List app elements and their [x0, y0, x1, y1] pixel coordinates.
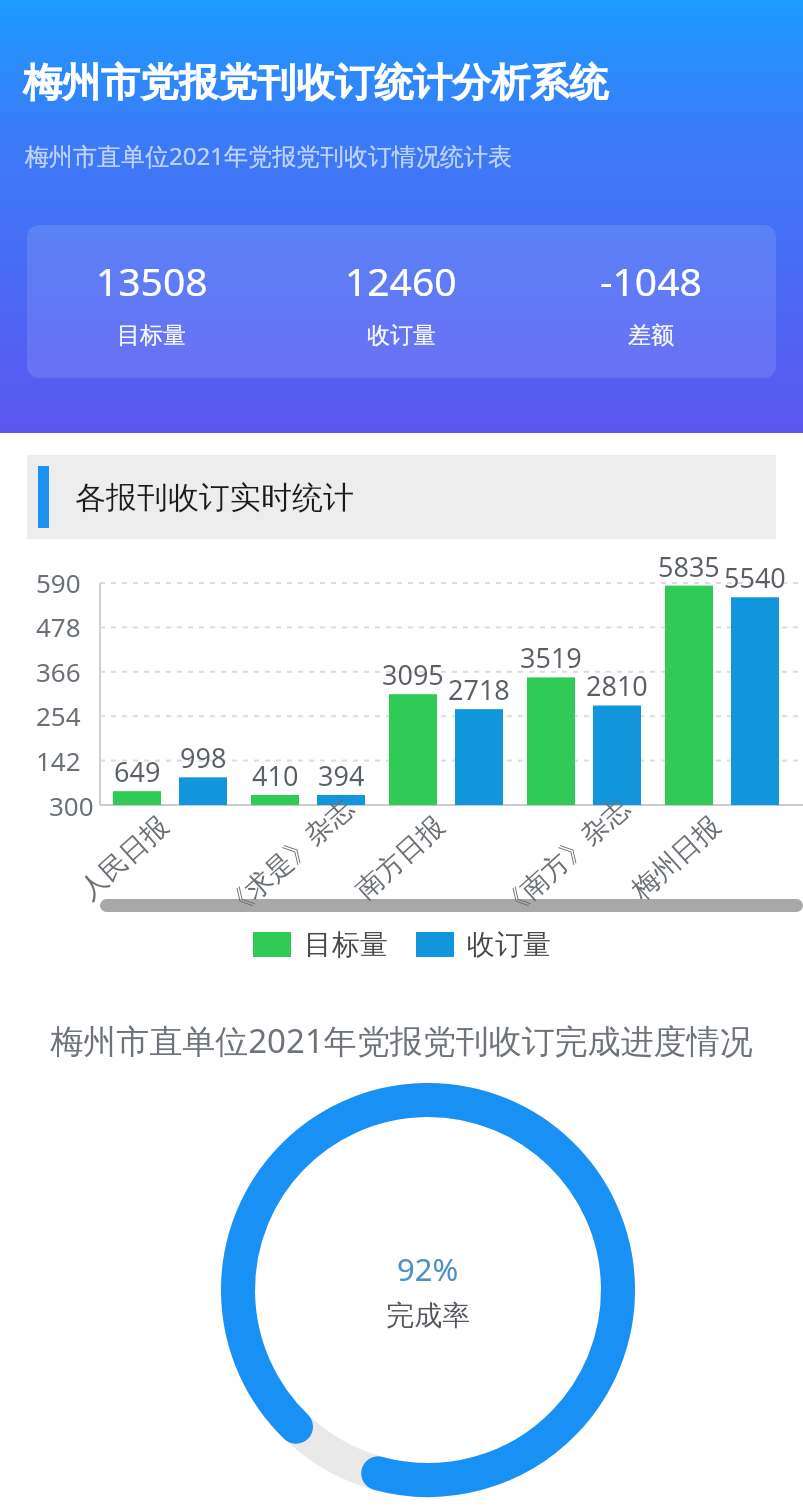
staticText: 394 [318, 757, 365, 793]
staticText: 各报刊收订实时统计 [75, 478, 354, 517]
staticText: 92% [397, 1248, 459, 1290]
staticText: 13508 [96, 254, 208, 307]
staticText: 《求是》杂志 [217, 791, 360, 925]
staticText: 2718 [448, 671, 510, 707]
button[interactable]: 13508 [27, 254, 276, 350]
staticText: 南方日报 [348, 809, 451, 907]
staticText: 3095 [382, 656, 444, 692]
staticText: 完成率 [386, 1298, 470, 1333]
staticText: 649 [114, 753, 161, 789]
staticText: 5835 [658, 548, 720, 584]
staticText: 12460 [345, 254, 457, 307]
staticText: 1420 [36, 743, 94, 779]
button[interactable]: 目标量 [0, 923, 803, 965]
staticText: 3660 [36, 654, 94, 690]
staticText: 目标量 [304, 927, 388, 962]
staticText: 梅州市直单位2021年党报党刊收订情况统计表 [25, 139, 512, 172]
staticText: 差额 [628, 321, 674, 350]
staticText: 《南方》杂志 [493, 791, 636, 925]
staticText: 4780 [36, 609, 94, 645]
button[interactable]: 各报刊收订实时统计 [27, 455, 776, 539]
staticText: 梅州市党报党刊收订统计分析系统 [23, 58, 608, 107]
staticText: 5540 [724, 559, 786, 595]
staticText: 梅州日报 [624, 809, 727, 907]
staticText: 5900 [36, 565, 94, 601]
staticText: 410 [252, 757, 299, 793]
staticText: 人民日报 [72, 809, 175, 907]
button[interactable]: 12460 [276, 254, 526, 350]
button[interactable]: -1048 [526, 254, 776, 350]
staticText: 收订量 [367, 321, 436, 350]
staticText: -1048 [600, 254, 702, 307]
button[interactable]: 完成率 92% [221, 1083, 635, 1497]
staticText: 3519 [520, 639, 582, 675]
staticText: 300 [49, 788, 94, 823]
staticText: 2540 [36, 698, 94, 734]
button[interactable]: 13508 [27, 225, 776, 378]
staticText: 2810 [586, 667, 648, 703]
staticText: 998 [180, 739, 227, 775]
staticText: 目标量 [117, 321, 186, 350]
staticText: 收订量 [467, 927, 551, 962]
staticText: 梅州市直单位2021年党报党刊收订完成进度情况 [0, 1018, 803, 1063]
